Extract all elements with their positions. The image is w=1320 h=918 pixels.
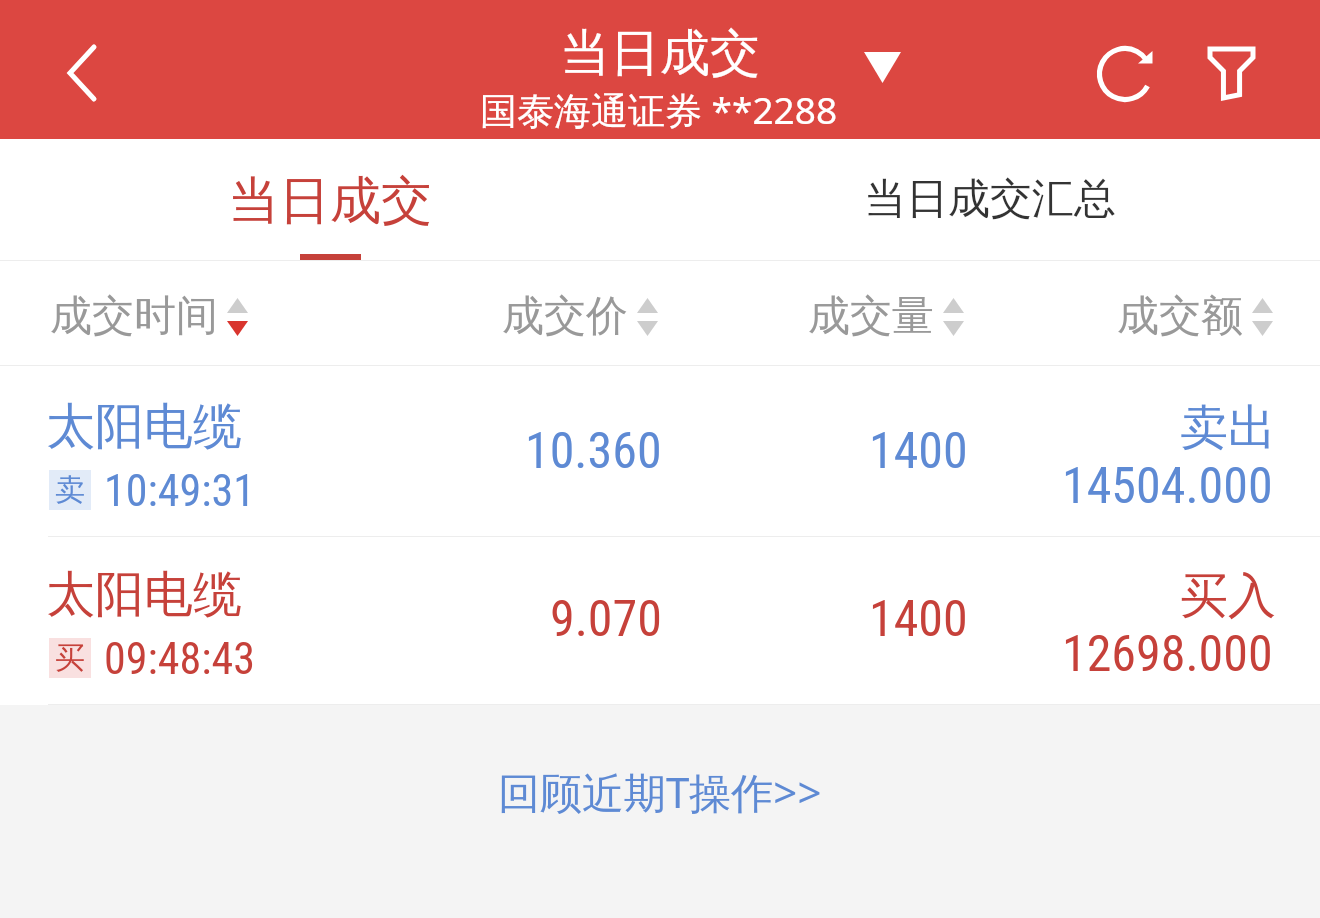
staticText: 9.070: [550, 590, 662, 649]
staticText: 成交量: [808, 290, 934, 343]
staticText: 10:49:31: [104, 465, 255, 517]
staticText: 14504.000: [1062, 457, 1273, 516]
button[interactable]: Refresh: [1075, 4, 1175, 143]
staticText: 当日成交: [228, 169, 432, 233]
staticText: 买: [55, 639, 85, 677]
staticText: 太阳电缆: [46, 564, 242, 626]
staticText: 成交额: [1117, 290, 1243, 343]
button[interactable]: 太阳电缆: [0, 537, 1320, 705]
staticText: 成交时间: [50, 290, 218, 343]
button[interactable]: 当日成交汇总: [660, 139, 1320, 260]
staticText: 12698.000: [1062, 625, 1273, 684]
staticText: 卖出: [1180, 398, 1276, 458]
staticText: 回顾近期T操作>>: [498, 763, 822, 820]
button[interactable]: 回顾近期T操作>>: [0, 705, 1320, 877]
button[interactable]: 太阳电缆: [0, 366, 1320, 537]
staticText: 国泰海通证券 **2288: [480, 84, 838, 135]
staticText: 成交价: [502, 290, 628, 343]
staticText: 买入: [1180, 566, 1276, 626]
staticText: 09:48:43: [104, 633, 255, 685]
button[interactable]: Back: [22, 0, 142, 139]
button[interactable]: 当日成交 国泰海通证券 **2288, switch account: [440, 0, 910, 139]
staticText: 1400: [869, 590, 968, 649]
staticText: 当日成交: [560, 22, 760, 85]
button[interactable]: 当日成交: [0, 139, 660, 260]
button[interactable]: Filter: [1181, 4, 1281, 143]
staticText: 卖: [55, 471, 85, 509]
staticText: 太阳电缆: [46, 396, 242, 458]
staticText: 10.360: [525, 422, 662, 481]
staticText: 当日成交汇总: [864, 173, 1116, 226]
staticText: 1400: [869, 422, 968, 481]
